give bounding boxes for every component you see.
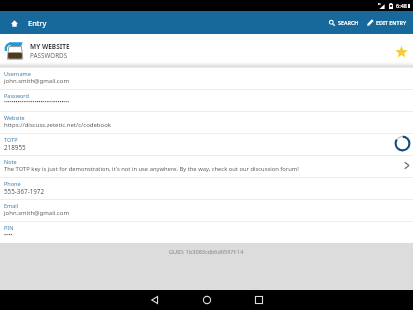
staticText: EDIT ENTRY — [376, 19, 407, 26]
staticText: The TOTP key is just for demonstration, … — [4, 165, 299, 173]
staticText: 6:48 — [396, 2, 407, 9]
button[interactable]: Phone — [0, 177, 413, 199]
button[interactable]: TOTP — [0, 133, 413, 155]
staticText: Note — [4, 158, 17, 165]
staticText: •••••••••••••••••••••••••••••••••• — [4, 99, 70, 106]
staticText: Username — [4, 70, 31, 77]
staticText: Website — [4, 114, 25, 121]
staticText: SEARCH — [338, 19, 359, 26]
button[interactable]: Username — [0, 67, 413, 89]
button[interactable]: Website — [0, 111, 413, 133]
staticText: PASSWORDS — [30, 51, 68, 60]
button[interactable]: Entry — [0, 18, 55, 28]
button[interactable]: Note — [0, 155, 413, 177]
staticText: PIN — [4, 224, 14, 231]
staticText: https://discuss.zetetic.net/c/codebook — [4, 121, 112, 129]
staticText: Phone — [4, 180, 21, 187]
staticText: john.smith@gmail.com — [4, 209, 69, 217]
button[interactable]: Home — [181, 292, 233, 308]
staticText: 218955 — [4, 143, 26, 152]
staticText: 555-367-1972 — [4, 187, 45, 196]
staticText: Password — [4, 92, 29, 99]
button[interactable]: Password — [0, 89, 413, 111]
button[interactable]: SEARCH — [325, 14, 363, 31]
staticText: MY WEBSITE — [30, 42, 70, 51]
staticText: Entry — [28, 18, 47, 28]
button[interactable]: Favorite — [390, 39, 413, 62]
staticText: Email — [4, 202, 19, 209]
button[interactable]: EDIT ENTRY — [363, 14, 413, 31]
button[interactable]: Back — [129, 292, 181, 308]
staticText: TOTP — [4, 136, 18, 143]
staticText: GUID: 1b3083cdb6d9597f-14 — [169, 248, 244, 255]
button[interactable]: Email — [0, 199, 413, 221]
staticText: •••• — [4, 231, 13, 239]
button[interactable]: PIN — [0, 221, 413, 243]
staticText: john.smith@gmail.com — [4, 77, 69, 85]
button[interactable]: Recent apps — [233, 292, 285, 308]
